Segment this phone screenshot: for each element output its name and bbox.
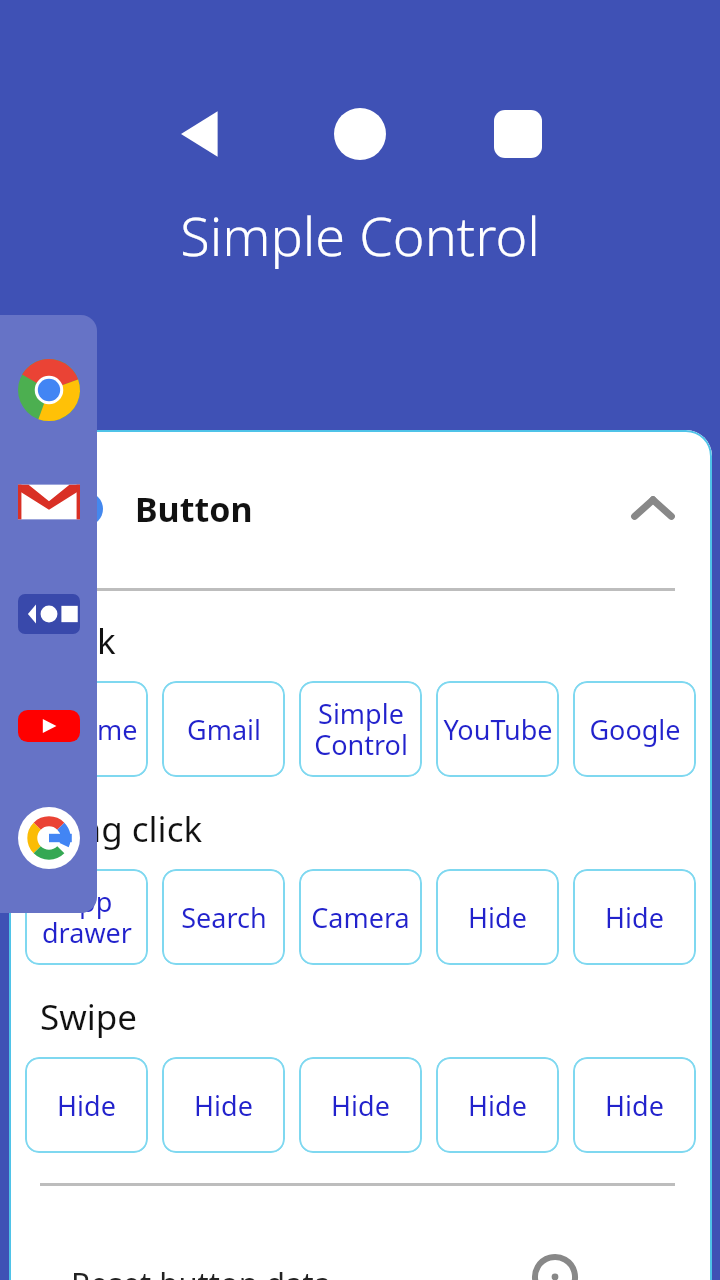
other: Google (18, 807, 80, 869)
button[interactable]: Reset button data (9, 1186, 712, 1280)
button[interactable]: YouTube (436, 681, 559, 777)
button[interactable]: Hide (299, 1057, 422, 1153)
button[interactable]: Chrome (0, 315, 97, 913)
button[interactable]: Hide (436, 1057, 559, 1153)
staticText: Reset button data (71, 1262, 331, 1280)
staticText: Hide (605, 899, 664, 936)
staticText: Swipe (40, 993, 138, 1041)
staticText: App drawer (42, 883, 132, 951)
staticText: Search (181, 899, 267, 936)
button[interactable]: Recents (481, 97, 555, 171)
button[interactable]: Google (573, 681, 696, 777)
button[interactable]: App drawer (25, 869, 148, 965)
other: Chrome (18, 359, 80, 421)
button[interactable]: Simple Control (299, 681, 422, 777)
staticText: Hide (57, 1087, 116, 1124)
staticText: Long click (40, 805, 203, 853)
staticText: Click (40, 617, 116, 665)
other: Gmail (18, 471, 80, 533)
other: YouTube (18, 695, 80, 757)
staticText: Chrome (36, 711, 138, 748)
button[interactable]: Gmail (162, 681, 285, 777)
button[interactable]: Hide (436, 869, 559, 965)
staticText: Camera (311, 899, 410, 936)
button[interactable]: Hide (162, 1057, 285, 1153)
button[interactable]: Button (9, 430, 712, 588)
staticText: Hide (468, 899, 527, 936)
button[interactable]: Hide (573, 869, 696, 965)
staticText: Hide (331, 1087, 390, 1124)
button[interactable]: Chrome (25, 681, 148, 777)
staticText: Button (135, 486, 253, 532)
other: Simple Control (18, 583, 80, 645)
staticText: Simple Control (314, 695, 408, 763)
button[interactable]: Hide (573, 1057, 696, 1153)
staticText: Google (589, 711, 681, 748)
staticText: Hide (468, 1087, 527, 1124)
button[interactable]: Back (165, 97, 239, 171)
staticText: YouTube (443, 711, 553, 748)
button[interactable]: Search (162, 869, 285, 965)
staticText: Hide (194, 1087, 253, 1124)
button[interactable]: Camera (299, 869, 422, 965)
staticText: Simple Control (0, 198, 720, 272)
staticText: Gmail (187, 711, 261, 748)
button[interactable]: Home (323, 97, 397, 171)
button[interactable]: Hide (25, 1057, 148, 1153)
staticText: Hide (605, 1087, 664, 1124)
